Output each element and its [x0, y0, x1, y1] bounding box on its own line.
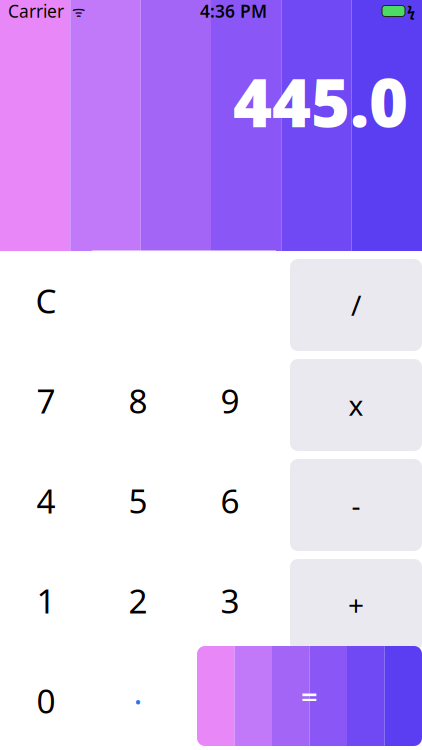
button[interactable]: x — [290, 359, 422, 451]
staticText: 8 — [128, 378, 147, 423]
button[interactable]: 3 — [184, 550, 276, 650]
staticText: ϟ — [407, 1, 415, 21]
staticText: 2 — [128, 578, 147, 623]
staticText: 4 — [36, 478, 55, 523]
staticText: 7 — [36, 378, 55, 423]
staticText: 3 — [220, 578, 239, 623]
staticText: 0 — [36, 678, 55, 723]
staticText: 4:36 PM — [200, 0, 267, 22]
staticText: - — [351, 486, 360, 524]
button[interactable]: 6 — [184, 450, 276, 550]
staticText: · — [133, 678, 142, 723]
button[interactable]: 8 — [92, 350, 184, 450]
button[interactable]: C — [0, 250, 92, 350]
button[interactable]: 1 — [0, 550, 92, 650]
button[interactable]: · — [92, 650, 184, 750]
staticText: 1 — [36, 578, 55, 623]
staticText: = — [301, 676, 318, 715]
button[interactable]: 4 — [0, 450, 92, 550]
staticText: ᯤ — [64, 1, 85, 21]
button[interactable]: = — [197, 646, 422, 746]
staticText: + — [348, 586, 364, 624]
button[interactable]: 0 — [0, 650, 92, 750]
staticText: / — [351, 286, 361, 324]
staticText: Carrier — [8, 0, 64, 22]
button[interactable]: 2 — [92, 550, 184, 650]
staticText: 6 — [220, 478, 239, 523]
staticText: 5 — [128, 478, 147, 523]
staticText: 445.0 — [233, 57, 408, 146]
button[interactable]: 5 — [92, 450, 184, 550]
button[interactable]: 7 — [0, 350, 92, 450]
button[interactable]: + — [290, 559, 422, 651]
button[interactable]: / — [290, 259, 422, 351]
button[interactable]: - — [290, 459, 422, 551]
staticText: 9 — [220, 378, 239, 423]
staticText: C — [35, 278, 56, 323]
button[interactable]: 9 — [184, 350, 276, 450]
staticText: x — [348, 386, 363, 424]
